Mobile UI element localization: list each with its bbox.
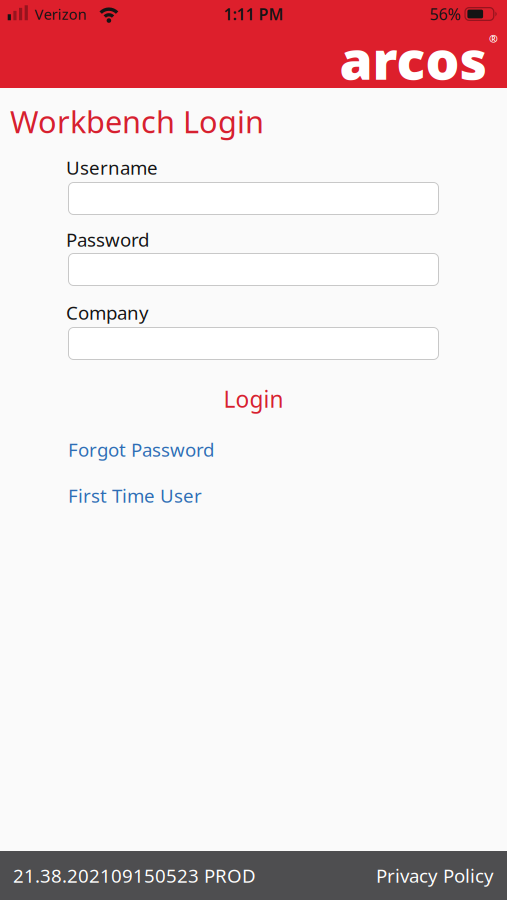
staticText: ® <box>489 32 498 46</box>
staticText: Privacy Policy <box>376 863 494 888</box>
staticText: Username <box>66 155 158 180</box>
staticText: Forgot Password <box>68 437 214 462</box>
button[interactable]: Login <box>223 384 283 414</box>
button[interactable]: First Time User <box>68 483 202 508</box>
staticText: Password <box>66 227 149 252</box>
staticText: Workbench Login <box>10 101 264 142</box>
staticText: 1:11 PM <box>223 3 283 25</box>
staticText: Login <box>223 384 283 414</box>
button[interactable]: Privacy Policy <box>376 863 494 888</box>
staticText: arcos <box>339 24 487 94</box>
button[interactable]: Forgot Password <box>68 437 214 462</box>
staticText: Company <box>66 300 149 325</box>
staticText: Verizon <box>34 4 86 24</box>
staticText: 56% <box>429 3 460 25</box>
staticText: First Time User <box>68 483 202 508</box>
staticText: 21.38.202109150523 PROD <box>13 863 256 888</box>
